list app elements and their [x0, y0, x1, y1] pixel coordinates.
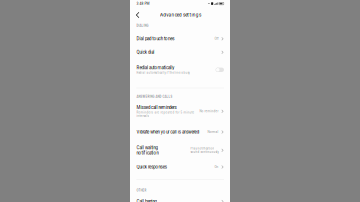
button[interactable]: Quick responses: [130, 162, 230, 171]
staticText: No reminder: [199, 109, 218, 113]
staticText: Reminders are repeated for 5 minute inte…: [136, 111, 194, 118]
staticText: Call waiting notification: [136, 145, 158, 155]
staticText: Quick responses: [136, 164, 167, 170]
button[interactable]: Back: [132, 9, 143, 21]
staticText: Play notification sound continuously: [190, 147, 218, 154]
button[interactable]: Call waiting notification: [130, 143, 230, 157]
staticText: Redial automatically: [136, 65, 174, 70]
staticText: Off: [214, 37, 218, 41]
staticText: ANSWERING AND CALLS: [136, 95, 172, 98]
button[interactable]: Quick dial: [130, 48, 230, 57]
staticText: Redial automatically if the line is busy: [136, 71, 189, 74]
staticText: Call barring: [136, 199, 156, 202]
staticText: DIALING: [136, 24, 148, 27]
button[interactable]: Call barring: [130, 197, 230, 202]
staticText: Dial pad touch tones: [136, 36, 174, 41]
staticText: Missed call reminders: [136, 105, 176, 110]
staticText: Advanced settings: [160, 12, 201, 18]
button[interactable]: Vibrate when your call is answered: [130, 127, 230, 136]
staticText: OTHER: [136, 189, 146, 192]
staticText: Normal: [207, 130, 218, 134]
staticText: 3:48 PM: [136, 2, 149, 6]
button[interactable]: Dial pad touch tones: [130, 34, 230, 43]
button[interactable]: Redial automatically: [136, 65, 224, 74]
button[interactable]: Missed call reminders: [130, 103, 230, 119]
staticText: Vibrate when your call is answered: [136, 129, 199, 135]
staticText: Quick dial: [136, 50, 154, 55]
staticText: On: [214, 165, 218, 169]
